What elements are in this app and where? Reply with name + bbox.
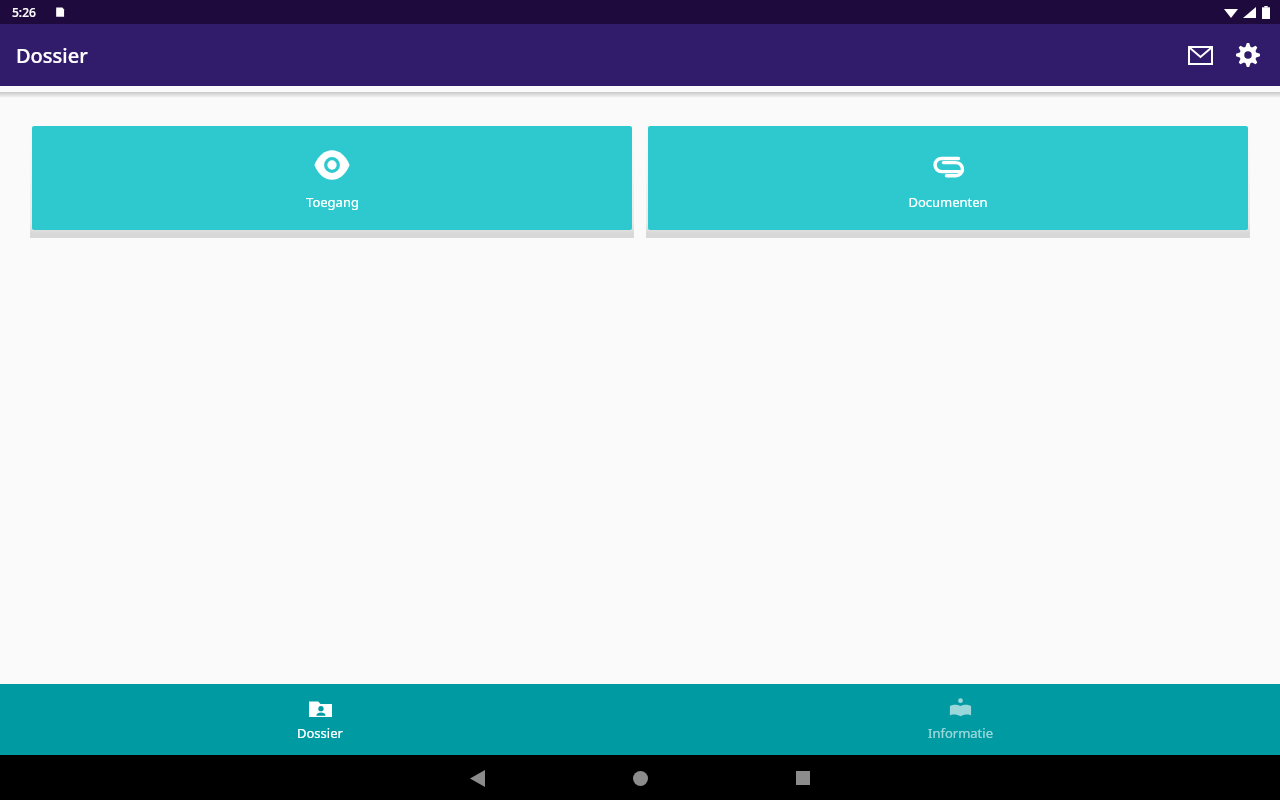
staticText: Toegang xyxy=(306,193,359,211)
button[interactable]: Messages xyxy=(1176,31,1224,79)
button[interactable]: Home xyxy=(618,756,662,800)
staticText: Documenten xyxy=(908,193,988,211)
button[interactable]: Recent apps xyxy=(781,756,825,800)
staticText: Dossier xyxy=(16,42,88,69)
button[interactable]: Dossier xyxy=(0,684,640,755)
staticText: Dossier xyxy=(297,724,343,742)
staticText: Informatie xyxy=(928,724,993,742)
button[interactable]: Settings xyxy=(1224,31,1272,79)
button[interactable]: Back xyxy=(455,756,499,800)
button[interactable]: Documenten xyxy=(648,126,1248,230)
button[interactable]: Toegang xyxy=(32,126,632,230)
staticText: 5:26 xyxy=(12,4,36,20)
button[interactable]: Informatie xyxy=(640,684,1280,755)
